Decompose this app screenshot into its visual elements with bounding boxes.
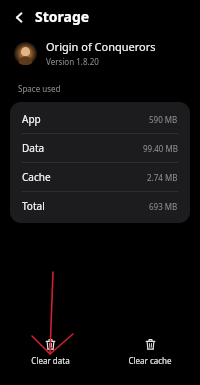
staticText: Space used xyxy=(18,83,61,94)
staticText: Data xyxy=(22,141,45,155)
button[interactable]: Clear cache xyxy=(100,338,200,366)
staticText: Version 1.8.20 xyxy=(46,56,99,67)
staticText: Clear data xyxy=(31,355,70,366)
staticText: 590 MB xyxy=(149,114,178,125)
button[interactable]: Cache xyxy=(10,163,190,192)
staticText: Storage xyxy=(35,7,90,26)
button[interactable]: Clear data xyxy=(0,338,100,366)
staticText: Origin of Conquerors xyxy=(46,39,156,54)
staticText: Total xyxy=(22,199,45,213)
staticText: App xyxy=(22,112,41,126)
staticText: 2.74 MB xyxy=(147,172,178,183)
button[interactable]: Origin of Conquerors xyxy=(14,39,200,67)
button[interactable]: Total xyxy=(10,192,190,220)
staticText: 693 MB xyxy=(149,201,178,212)
staticText: Cache xyxy=(22,170,51,184)
button[interactable]: Data xyxy=(10,134,190,163)
staticText: Clear cache xyxy=(128,355,172,366)
staticText: 99.40 MB xyxy=(143,143,178,154)
button[interactable]: Back xyxy=(8,6,30,28)
button[interactable]: App xyxy=(10,105,190,134)
